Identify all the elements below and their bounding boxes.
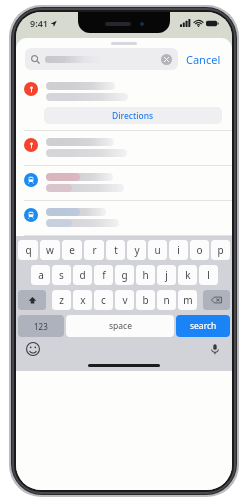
button[interactable]: u [148,240,167,260]
button[interactable] [16,131,232,165]
button[interactable]: Clear search [161,54,172,65]
button[interactable]: t [106,240,125,260]
staticText: 123 [34,321,48,332]
button[interactable]: w [40,240,60,260]
staticText: space [109,320,132,332]
staticText: 9:41 [30,17,48,29]
staticText: o [196,243,203,257]
staticText: f [102,268,106,282]
staticText: y [134,243,140,257]
button[interactable]: space [66,315,174,337]
staticText: d [79,268,86,282]
staticText: t [114,243,118,257]
button[interactable]: search [176,315,230,337]
button[interactable]: k [178,265,197,285]
staticText: z [59,293,64,307]
staticText: n [163,293,170,307]
staticText: x [80,293,86,307]
button[interactable]: r [84,240,104,260]
button[interactable]: e [62,240,82,260]
button[interactable]: x [73,290,92,310]
button[interactable]: b [136,290,155,310]
staticText: r [92,243,97,257]
staticText: b [142,293,149,307]
button[interactable]: Backspace [203,290,230,310]
button[interactable]: n [157,290,176,310]
button[interactable]: y [127,240,146,260]
button[interactable]: c [94,290,113,310]
button[interactable]: Clear search [25,48,178,70]
staticText: k [185,268,191,282]
button[interactable]: v [115,290,134,310]
staticText: q [25,243,32,257]
button[interactable]: s [52,265,71,285]
staticText: s [59,268,64,282]
staticText: l [207,268,210,282]
button[interactable]: p [211,240,230,260]
button[interactable]: f [94,265,113,285]
button[interactable]: l [199,265,218,285]
button[interactable]: o [190,240,209,260]
button[interactable]: h [136,265,155,285]
button[interactable]: Shift [18,290,46,310]
button[interactable]: z [52,290,71,310]
button[interactable]: Directions [16,75,232,130]
button[interactable] [16,201,232,235]
staticText: search [190,320,217,332]
staticText: a [38,268,44,282]
staticText: Cancel [186,52,221,67]
staticText: p [217,243,224,257]
staticText: u [154,243,161,257]
button[interactable]: i [169,240,188,260]
button[interactable]: Directions [44,107,222,124]
button[interactable]: Cancel [184,49,223,70]
staticText: m [183,293,193,307]
button[interactable]: q [18,240,38,260]
staticText: h [142,268,149,282]
staticText: v [122,293,128,307]
staticText: e [69,243,75,257]
staticText: i [177,243,180,257]
button[interactable]: Emoji keyboard [26,342,40,356]
button[interactable]: d [73,265,92,285]
button[interactable]: g [115,265,134,285]
staticText: c [101,293,106,307]
button[interactable]: a [31,265,50,285]
staticText: j [165,268,168,282]
button[interactable]: 123 [18,315,64,337]
button[interactable] [16,166,232,200]
staticText: w [46,243,54,257]
staticText: Directions [112,110,154,122]
button[interactable]: Dictation [208,342,222,356]
button[interactable]: j [157,265,176,285]
button[interactable]: m [178,290,197,310]
staticText: g [121,268,128,282]
